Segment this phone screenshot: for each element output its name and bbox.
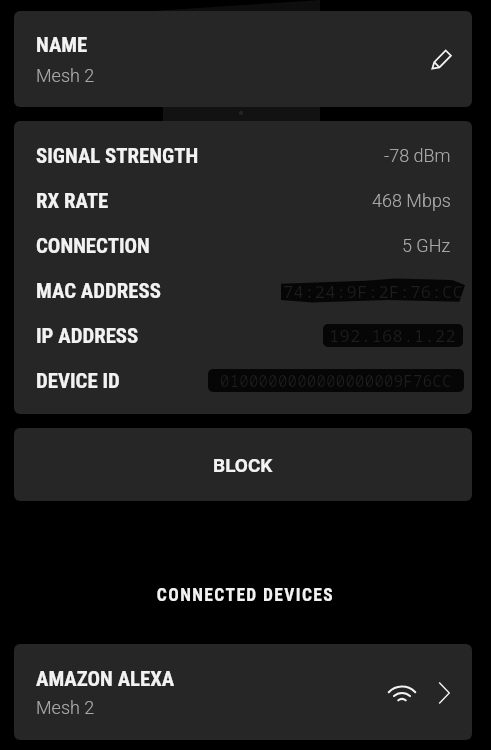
staticText: DEVICE ID xyxy=(36,369,120,393)
button[interactable]: Wi-Fi connection xyxy=(382,673,422,713)
staticText: -78 dBm xyxy=(384,145,451,166)
staticText: 0100000000000000009F76CC xyxy=(220,370,452,391)
staticText: Mesh 2 xyxy=(36,697,95,718)
staticText: IP ADDRESS xyxy=(36,324,139,348)
button[interactable]: NAME xyxy=(14,11,472,107)
staticText: 192.168.1.22 xyxy=(329,324,457,347)
staticText: BLOCK xyxy=(213,454,273,476)
staticText: NAME xyxy=(36,33,88,57)
button[interactable]: AMAZON ALEXA xyxy=(14,644,472,740)
staticText: CONNECTED DEVICES xyxy=(0,585,491,606)
button[interactable]: Edit name xyxy=(419,37,463,81)
staticText: SIGNAL STRENGTH xyxy=(36,144,199,168)
staticText: RX RATE xyxy=(36,189,109,213)
button[interactable]: Device details xyxy=(424,673,464,713)
staticText: 5 GHz xyxy=(402,235,451,256)
staticText: 468 Mbps xyxy=(372,190,451,211)
staticText: Mesh 2 xyxy=(36,65,95,86)
staticText: 74:24:9F:2F:76:CC xyxy=(283,280,464,303)
button[interactable]: BLOCK xyxy=(14,428,472,501)
staticText: CONNECTION xyxy=(36,234,150,258)
staticText: AMAZON ALEXA xyxy=(36,667,175,691)
staticText: MAC ADDRESS xyxy=(36,279,161,303)
